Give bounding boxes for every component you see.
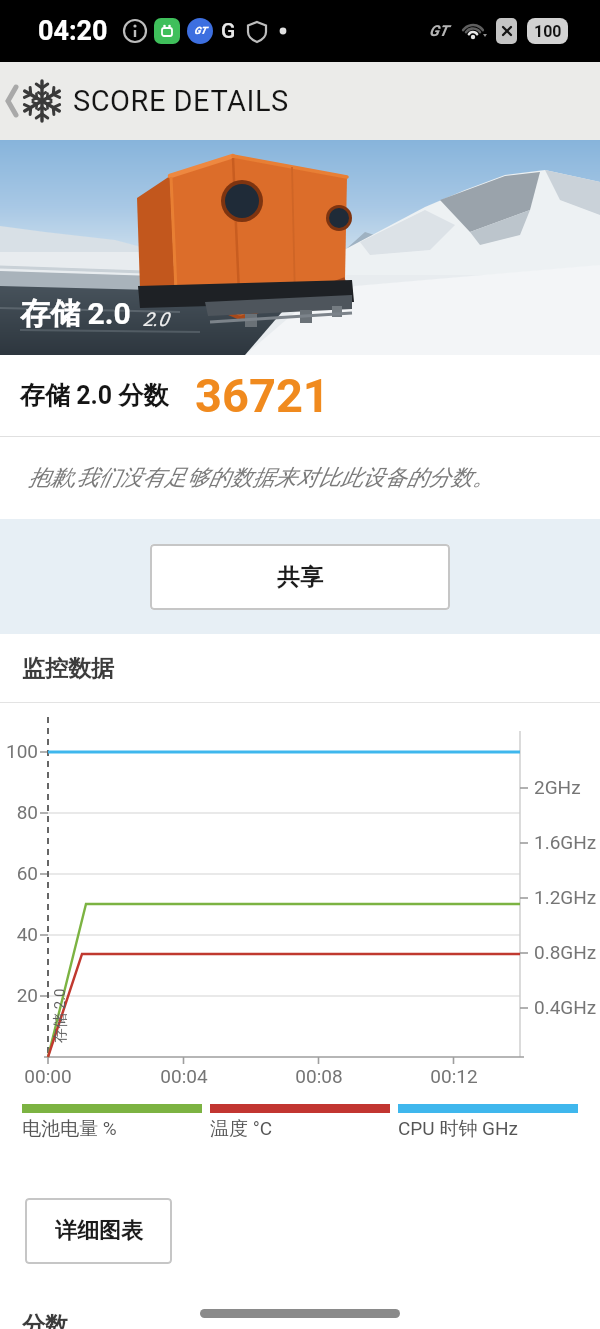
staticText: 00:08 — [289, 1065, 349, 1087]
staticText: 0.8GHz — [534, 941, 597, 963]
staticText: 存储 2.0 — [51, 988, 70, 1043]
staticText: G — [221, 19, 236, 44]
staticText: 20 — [0, 984, 38, 1006]
staticText: GT — [194, 25, 207, 37]
button[interactable]: 详细图表 — [25, 1198, 172, 1264]
staticText: CPU 时钟 GHz — [398, 1117, 519, 1141]
staticText: 1.6GHz — [534, 831, 597, 853]
staticText: 00:00 — [18, 1065, 78, 1087]
staticText: 存储 2.0 — [20, 295, 131, 333]
staticText: 00:04 — [154, 1065, 214, 1087]
button[interactable]: 共享 — [150, 544, 450, 610]
staticText: 2GHz — [534, 776, 581, 798]
staticText: 共享 — [277, 563, 323, 592]
staticText: 40 — [0, 923, 38, 945]
staticText: 详细图表 — [55, 1217, 143, 1245]
staticText: 存储 2.0 分数 — [20, 380, 169, 411]
staticText: 36721 — [195, 368, 330, 423]
staticText: SCORE DETAILS — [73, 84, 289, 118]
staticText: 监控数据 — [22, 654, 114, 683]
staticText: 温度 °C — [210, 1117, 273, 1141]
staticText: 100 — [534, 22, 562, 41]
staticText: 分数 — [22, 1311, 68, 1329]
staticText: GT — [429, 22, 448, 40]
button[interactable]: SCORE DETAILS — [0, 62, 600, 140]
staticText: 电池电量 % — [22, 1117, 117, 1141]
staticText: 100 — [0, 740, 38, 762]
staticText: 80 — [0, 801, 38, 823]
staticText: 00:12 — [424, 1065, 484, 1087]
staticText: 1.2GHz — [534, 886, 597, 908]
staticText: 60 — [0, 862, 38, 884]
staticText: 0.4GHz — [534, 996, 597, 1018]
staticText: 抱歉,我们没有足够的数据来对比此设备的分数。 — [28, 464, 495, 492]
staticText: 04:20 — [38, 15, 108, 47]
staticText: 2.0 — [143, 308, 169, 330]
